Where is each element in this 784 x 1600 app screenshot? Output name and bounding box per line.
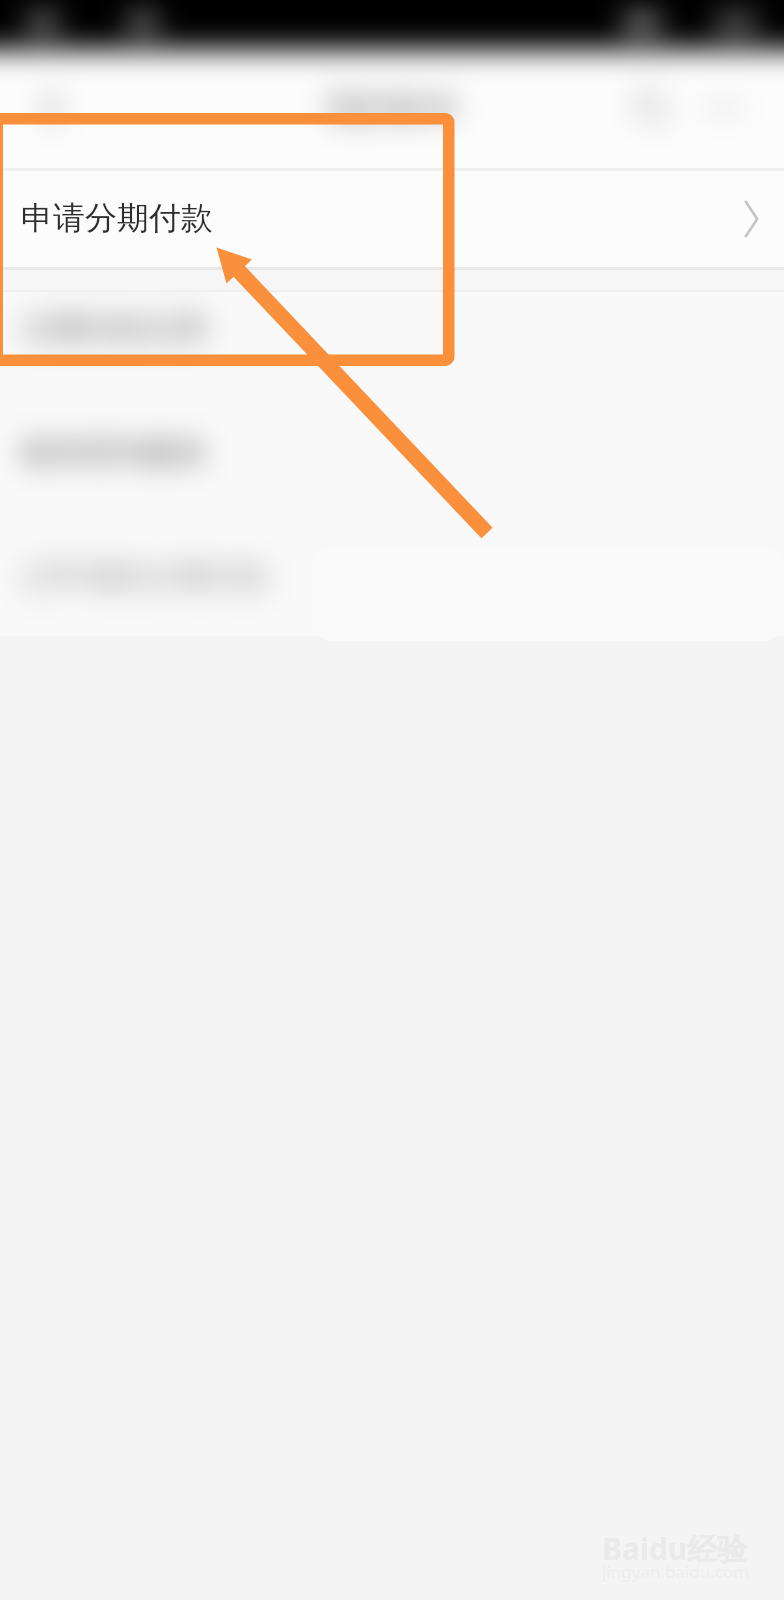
staticText: 分期付款记录 (22, 309, 208, 348)
staticText: 申请分期付款 (21, 198, 213, 238)
button[interactable]: 已申请的分期付款 (0, 514, 784, 635)
button[interactable]: 分期付款记录 (0, 292, 784, 390)
button[interactable]: 申请分期付款 (0, 171, 784, 267)
button[interactable]: 分期付款记录 (0, 293, 784, 417)
button[interactable]: 账单查询服务 (0, 390, 784, 514)
button[interactable]: 已申请的分期付款 (0, 541, 784, 636)
button[interactable]: 账单查询服务 (0, 417, 784, 541)
staticText: 我的账单 (326, 87, 458, 129)
button[interactable]: Back (35, 91, 69, 125)
staticText: 已申请的分期付款 (22, 557, 270, 596)
staticText: 账单查询服务 (22, 433, 208, 472)
staticText: Baidu经验 (602, 1528, 748, 1569)
